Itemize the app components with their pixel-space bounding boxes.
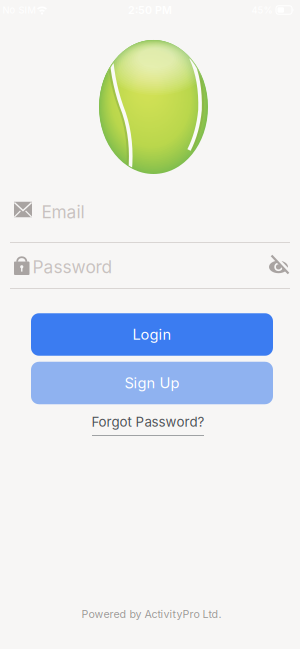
button[interactable]: Login [31, 313, 273, 356]
button[interactable]: Forgot Password? [78, 411, 218, 436]
button[interactable]: Sign Up [31, 362, 273, 404]
button[interactable]: Email [0, 184, 300, 244]
button[interactable]: Show password [268, 256, 288, 276]
staticText: Email [41, 202, 84, 222]
staticText: Forgot Password? [91, 414, 204, 430]
button[interactable]: Password [0, 246, 300, 292]
staticText: Password [32, 257, 112, 277]
staticText: Sign Up [124, 374, 179, 392]
staticText: 2:50 PM [128, 4, 172, 16]
staticText: Login [132, 326, 171, 343]
staticText: Powered by ActivityPro Ltd. [81, 608, 221, 620]
